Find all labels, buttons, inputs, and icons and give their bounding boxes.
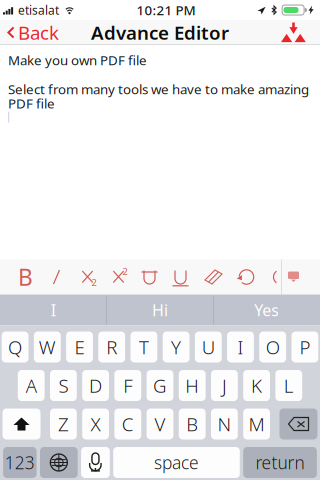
button[interactable]: Dictate [81,447,110,478]
button[interactable]: R [98,331,125,362]
staticText: Make you own PDF file [8,51,147,69]
button[interactable]: Undo [231,259,262,294]
staticText: V [154,412,165,436]
button[interactable]: W [34,331,61,362]
staticText: B [18,262,33,292]
button[interactable]: Z [50,408,77,439]
staticText: Z [58,412,69,436]
staticText: T [139,335,149,359]
staticText: J [222,373,227,398]
staticText: L [284,373,294,398]
staticText: I [51,299,56,321]
button[interactable]: return [243,447,317,478]
staticText: 10:21 PM [136,1,195,19]
staticText: U [202,335,215,359]
staticText: W [39,335,56,359]
button[interactable]: Shift [2,408,40,439]
button[interactable]: O [259,331,286,362]
staticText: R [106,335,117,359]
button[interactable]: Erase [196,259,231,294]
button[interactable]: L [275,370,302,401]
button[interactable]: Back [2,20,64,45]
button[interactable]: I [227,331,254,362]
staticText: 2 [122,265,127,278]
button[interactable]: Delete [279,408,317,439]
staticText: PDF file [8,94,55,112]
button[interactable]: Q [2,331,28,362]
button[interactable]: B [179,408,206,439]
button[interactable]: Strikethrough [134,259,165,294]
button[interactable]: T [130,331,157,362]
button[interactable]: H [179,370,206,401]
button[interactable]: V [147,408,173,439]
staticText: Y [171,335,181,359]
button[interactable]: Superscript [103,259,134,294]
staticText: etisalat [18,2,59,18]
staticText: Hi [152,299,168,321]
button[interactable]: 123 [3,447,37,478]
button[interactable]: U [195,331,222,362]
button[interactable]: Import [275,20,318,45]
staticText: S [58,373,68,398]
staticText: D [89,373,102,398]
staticText: F [123,373,132,398]
button[interactable]: F [114,370,141,401]
staticText: C [122,412,134,436]
button[interactable]: Hi [107,294,213,325]
button[interactable]: Subscript [72,259,103,294]
button[interactable]: Redo [271,259,281,294]
button[interactable]: K [243,370,270,401]
button[interactable]: Underline [165,259,196,294]
staticText: M [249,412,265,436]
button[interactable]: Italic [41,259,72,294]
staticText: P [299,335,310,359]
button[interactable]: N [211,408,238,439]
button[interactable]: J [211,370,238,401]
staticText: K [251,373,262,398]
staticText: space [154,451,199,474]
button[interactable]: Hide keyboard [282,259,305,294]
staticText: H [185,373,199,398]
button[interactable]: Bold [10,259,41,294]
staticText: Q [8,335,22,359]
button[interactable]: X [82,408,109,439]
button[interactable]: P [291,331,318,362]
staticText: N [217,412,231,436]
staticText: O [266,335,280,359]
button[interactable]: M [243,408,270,439]
staticText: I [237,335,243,359]
button[interactable]: Yes [213,294,320,325]
staticText: Back [18,20,59,45]
button[interactable]: I [0,294,107,325]
button[interactable]: D [82,370,109,401]
staticText: Advance Editor [91,20,229,45]
staticText: return [255,451,304,474]
staticText: A [26,373,37,398]
staticText: Select from many tools we have to make a… [8,80,309,98]
button[interactable]: C [114,408,141,439]
staticText: E [74,335,84,359]
button[interactable]: Y [163,331,189,362]
staticText: Yes [254,299,279,321]
staticText: X [91,412,101,436]
staticText: B [186,412,198,436]
staticText: 123 [5,451,35,474]
button[interactable]: Next keyboard [40,447,78,478]
button[interactable]: E [66,331,93,362]
staticText: G [153,373,167,398]
button[interactable]: space [113,447,240,478]
button[interactable]: S [50,370,77,401]
button[interactable]: A [18,370,45,401]
staticText: 2 [91,276,96,289]
button[interactable]: G [147,370,173,401]
